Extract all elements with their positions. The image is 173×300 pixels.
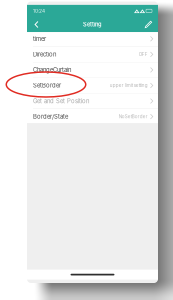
button[interactable]: Get and Set Position (27, 93, 158, 109)
staticText: NoSetBorder (119, 114, 148, 119)
button[interactable]: SetBorder (27, 78, 158, 93)
staticText: 10:24 (33, 8, 45, 14)
button[interactable]: ChangeCurtain (27, 62, 158, 77)
staticText: timer (33, 35, 46, 42)
staticText: upper limit setting (110, 83, 148, 88)
staticText: ChangeCurtain (33, 66, 71, 73)
staticText: Setting (83, 21, 102, 28)
staticText: Get and Set Position (33, 97, 89, 105)
button[interactable]: Edit (142, 17, 155, 32)
button[interactable]: Back (30, 17, 43, 32)
button[interactable]: Direction (27, 47, 158, 62)
button[interactable]: timer (27, 31, 158, 46)
staticText: SetBorder (33, 82, 61, 89)
button[interactable]: Border/State (27, 109, 158, 124)
staticText: Direction (33, 51, 56, 58)
staticText: OFF (139, 52, 148, 57)
staticText: Border/State (33, 113, 68, 120)
